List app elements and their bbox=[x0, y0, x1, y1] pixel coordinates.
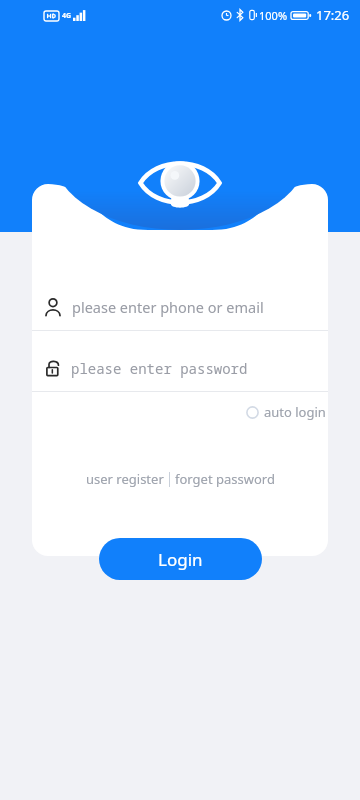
staticText: 4G bbox=[62, 11, 72, 21]
button[interactable]: Password bbox=[32, 353, 328, 383]
button[interactable]: Login bbox=[99, 538, 262, 580]
staticText: please enter phone or email bbox=[72, 297, 264, 317]
button[interactable]: Phone or email bbox=[32, 292, 328, 322]
staticText: please enter password bbox=[71, 359, 248, 378]
staticText: Login bbox=[158, 548, 203, 571]
button[interactable]: user register bbox=[81, 467, 169, 491]
staticText: user register bbox=[86, 470, 164, 488]
staticText: auto login bbox=[264, 403, 326, 421]
button[interactable]: forget password bbox=[170, 467, 280, 491]
staticText: 100% bbox=[259, 8, 288, 23]
staticText: forget password bbox=[175, 470, 275, 488]
staticText: 17:26 bbox=[316, 6, 350, 24]
button[interactable]: auto login bbox=[244, 399, 328, 425]
